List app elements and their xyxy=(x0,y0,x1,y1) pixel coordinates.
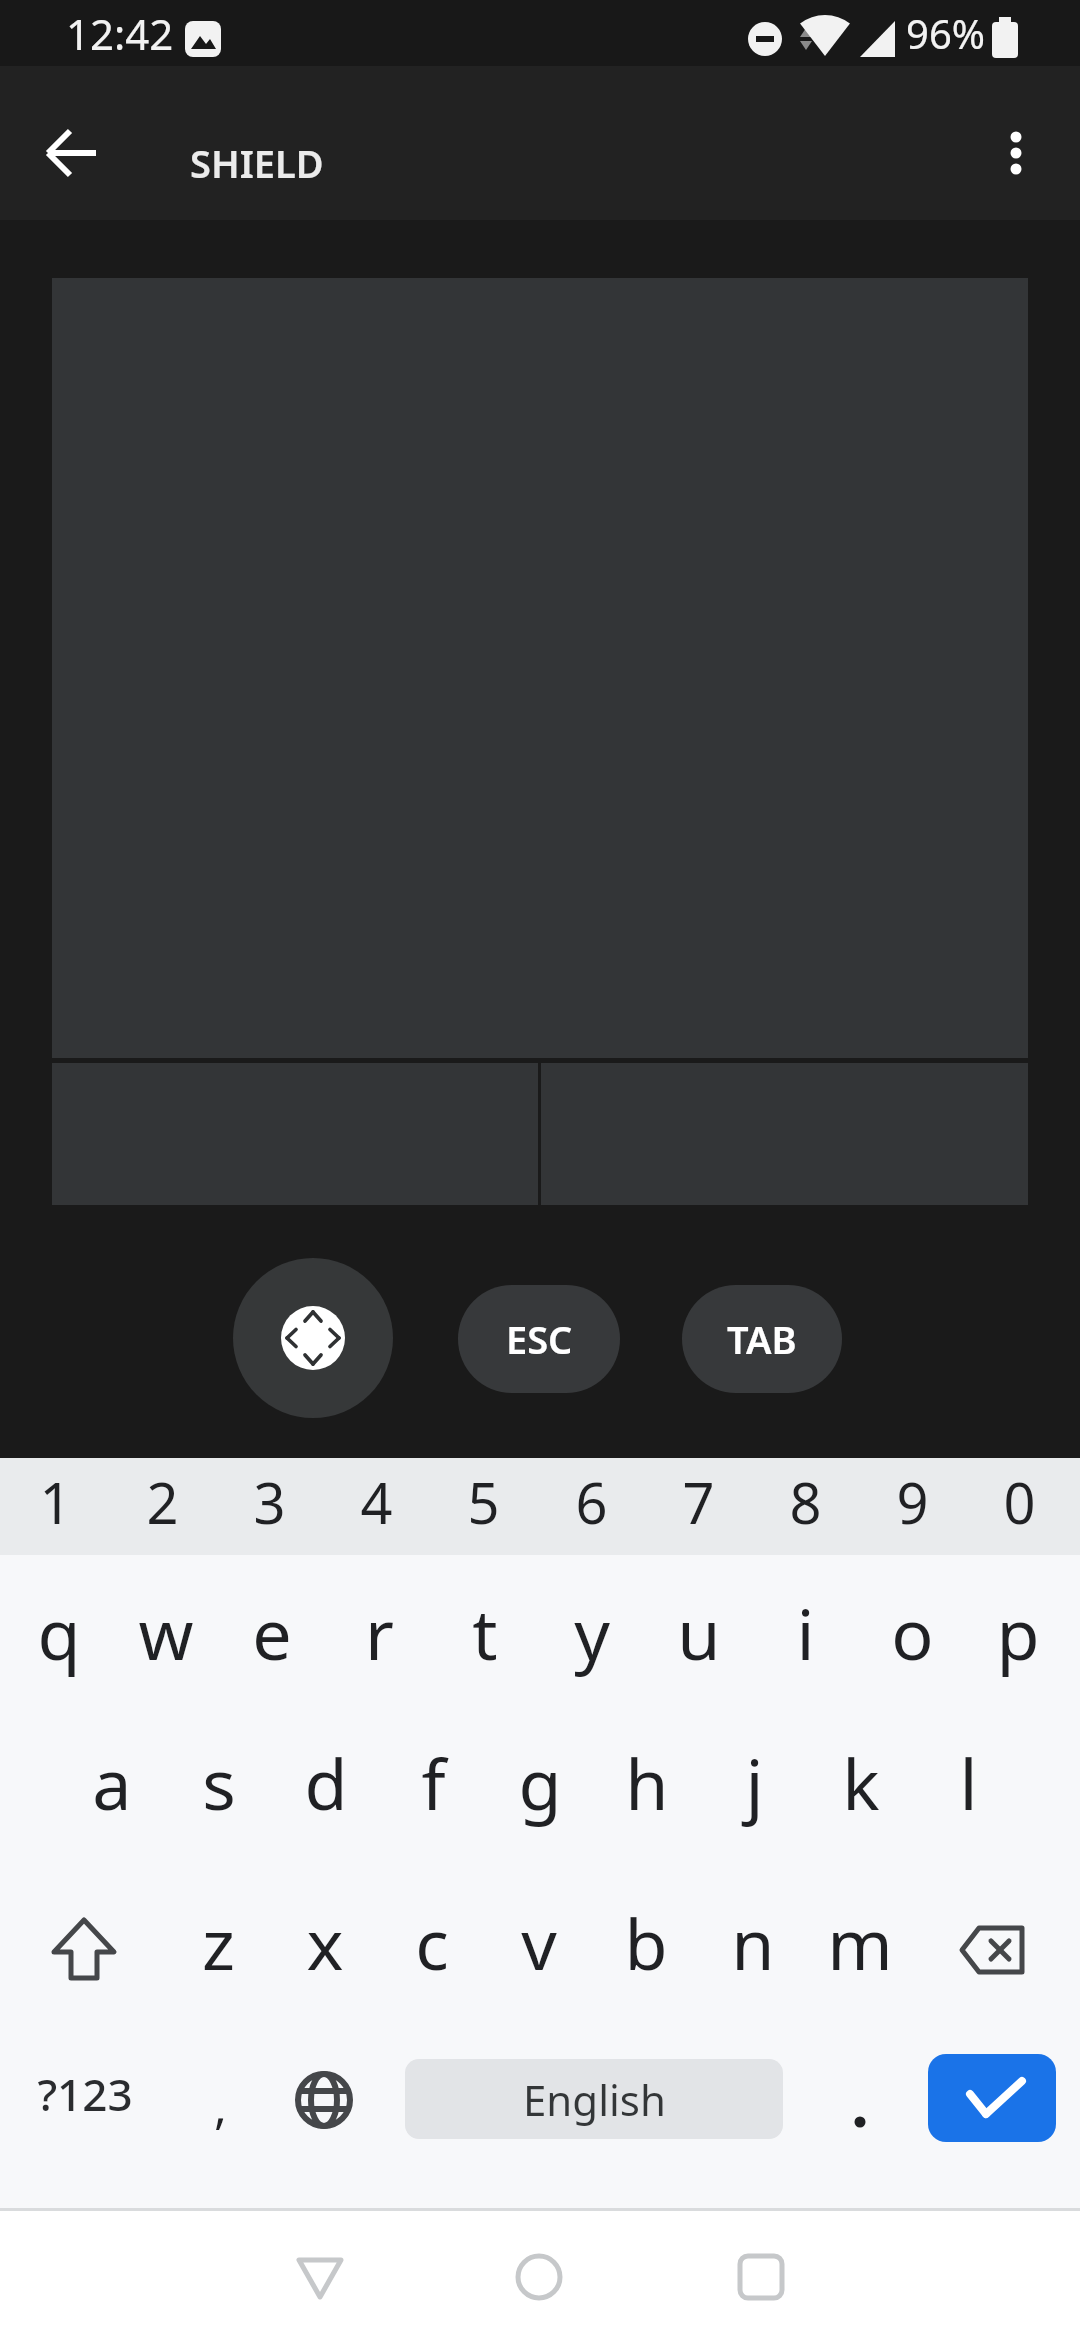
staticText: 8 xyxy=(789,1464,822,1540)
button[interactable]: f xyxy=(381,1712,485,1852)
button[interactable]: TAB xyxy=(682,1285,842,1393)
staticText: u xyxy=(677,1585,721,1680)
button[interactable]: v xyxy=(487,1872,591,2012)
button[interactable]: y xyxy=(540,1562,644,1702)
button[interactable]: 2 xyxy=(110,1454,214,1549)
staticText: s xyxy=(202,1735,236,1830)
staticText: 0 xyxy=(1003,1464,1036,1540)
button[interactable] xyxy=(968,105,1064,201)
staticText: j xyxy=(745,1735,764,1830)
button[interactable]: m xyxy=(808,1872,912,2012)
staticText: 5 xyxy=(467,1464,500,1540)
button[interactable]: b xyxy=(594,1872,698,2012)
staticText: q xyxy=(37,1585,81,1680)
staticText: h xyxy=(625,1735,669,1830)
staticText: z xyxy=(202,1895,235,1990)
button[interactable]: 1 xyxy=(3,1454,107,1549)
button[interactable]: o xyxy=(860,1562,964,1702)
staticText: 7 xyxy=(682,1464,715,1540)
staticText: w xyxy=(138,1585,194,1680)
staticText: , xyxy=(214,2073,227,2138)
button[interactable]: ESC xyxy=(458,1285,620,1393)
button[interactable] xyxy=(934,1880,1054,2020)
staticText: 1 xyxy=(39,1464,72,1540)
button[interactable]: e xyxy=(220,1562,324,1702)
staticText: SHIELD xyxy=(190,137,324,189)
staticText: v xyxy=(521,1895,557,1990)
button[interactable]: u xyxy=(647,1562,751,1702)
button[interactable] xyxy=(269,2040,379,2160)
button[interactable] xyxy=(24,105,120,201)
staticText: b xyxy=(624,1895,668,1990)
button[interactable]: 5 xyxy=(431,1454,535,1549)
button[interactable]: t xyxy=(433,1562,537,1702)
button[interactable]: w xyxy=(114,1562,218,1702)
button[interactable]: 6 xyxy=(539,1454,643,1549)
button[interactable]: i xyxy=(753,1562,857,1702)
staticText: English xyxy=(523,2071,666,2128)
button[interactable] xyxy=(928,2054,1056,2142)
button[interactable]: q xyxy=(7,1562,111,1702)
staticText: 4 xyxy=(360,1464,393,1540)
button[interactable]: 3 xyxy=(217,1454,321,1549)
staticText: 96% xyxy=(906,6,985,60)
button[interactable]: 0 xyxy=(967,1454,1071,1549)
staticText: 6 xyxy=(575,1464,608,1540)
button[interactable]: , xyxy=(180,2045,260,2165)
staticText: r xyxy=(365,1585,394,1680)
button[interactable]: ?123 xyxy=(20,2034,150,2154)
staticText: k xyxy=(842,1735,880,1830)
button[interactable]: a xyxy=(60,1712,164,1852)
staticText: y xyxy=(574,1585,610,1680)
button[interactable]: l xyxy=(916,1712,1020,1852)
staticText: ESC xyxy=(506,1313,573,1365)
staticText: 9 xyxy=(896,1464,929,1540)
button[interactable] xyxy=(24,1880,144,2020)
button[interactable]: 4 xyxy=(324,1454,428,1549)
button[interactable]: p xyxy=(966,1562,1070,1702)
staticText: f xyxy=(421,1735,446,1830)
staticText: x xyxy=(306,1895,344,1990)
staticText: n xyxy=(731,1895,775,1990)
button[interactable]: x xyxy=(273,1872,377,2012)
staticText: TAB xyxy=(727,1313,797,1365)
staticText: 2 xyxy=(146,1464,179,1540)
staticText: p xyxy=(996,1585,1040,1680)
staticText: a xyxy=(92,1735,132,1830)
button[interactable] xyxy=(805,2040,915,2160)
button[interactable]: d xyxy=(274,1712,378,1852)
staticText: 12:42 xyxy=(66,5,174,62)
staticText: m xyxy=(827,1895,893,1990)
button[interactable]: z xyxy=(166,1872,270,2012)
staticText: l xyxy=(959,1735,978,1830)
button[interactable]: c xyxy=(380,1872,484,2012)
button[interactable]: r xyxy=(327,1562,431,1702)
button[interactable]: k xyxy=(809,1712,913,1852)
button[interactable]: 9 xyxy=(860,1454,964,1549)
button[interactable]: s xyxy=(167,1712,271,1852)
button[interactable] xyxy=(691,2208,831,2340)
button[interactable]: 8 xyxy=(753,1454,857,1549)
staticText: o xyxy=(891,1585,934,1680)
button[interactable]: h xyxy=(595,1712,699,1852)
button[interactable] xyxy=(233,1258,393,1418)
staticText: c xyxy=(415,1895,449,1990)
button[interactable]: 7 xyxy=(646,1454,750,1549)
staticText: ?123 xyxy=(37,2064,133,2124)
button[interactable] xyxy=(469,2208,609,2340)
staticText: i xyxy=(796,1585,815,1680)
staticText: g xyxy=(518,1735,562,1830)
button[interactable]: English xyxy=(405,2059,783,2139)
staticText: e xyxy=(252,1585,292,1680)
staticText: t xyxy=(472,1585,498,1680)
button[interactable]: g xyxy=(488,1712,592,1852)
button[interactable]: n xyxy=(701,1872,805,2012)
button[interactable]: j xyxy=(702,1712,806,1852)
button[interactable] xyxy=(250,2208,390,2340)
staticText: d xyxy=(304,1735,348,1830)
staticText: 3 xyxy=(253,1464,286,1540)
